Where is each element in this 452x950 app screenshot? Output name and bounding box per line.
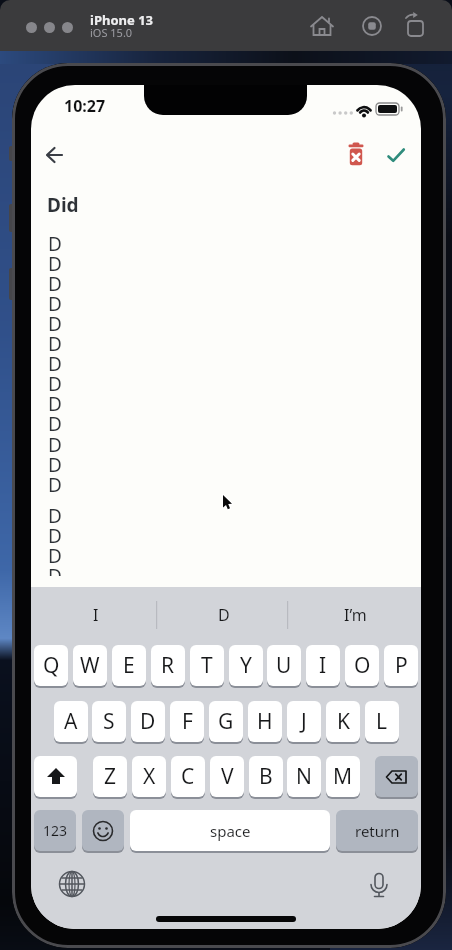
button[interactable] [34, 756, 77, 797]
staticText: K [337, 707, 350, 736]
staticText: M [333, 762, 353, 791]
staticText: A [64, 707, 78, 736]
button[interactable]: G [209, 701, 243, 742]
button[interactable]: I [33, 597, 158, 633]
staticText: 10:27 [64, 95, 106, 117]
button[interactable] [356, 10, 388, 42]
button[interactable]: return [336, 810, 418, 851]
button[interactable] [400, 10, 432, 42]
button[interactable] [339, 135, 373, 169]
staticText: Did [47, 192, 79, 218]
staticText: N [296, 762, 312, 791]
button[interactable]: D [131, 701, 165, 742]
staticText: F [182, 707, 193, 736]
staticText: I’m [344, 604, 367, 626]
staticText: G [218, 707, 234, 736]
staticText: Y [240, 651, 252, 680]
button[interactable]: space [130, 810, 330, 851]
staticText: D [218, 604, 230, 626]
button[interactable] [57, 869, 87, 899]
staticText: D [48, 271, 62, 297]
staticText: S [103, 707, 115, 736]
staticText: V [221, 762, 234, 791]
staticText: D [48, 523, 62, 549]
button[interactable]: J [287, 701, 321, 742]
button[interactable]: Y [229, 645, 263, 686]
staticText: L [376, 707, 388, 736]
staticText: D [48, 432, 62, 458]
button[interactable]: T [190, 645, 224, 686]
button[interactable] [44, 22, 55, 33]
staticText: T [201, 651, 213, 680]
staticText: D [48, 472, 62, 498]
staticText: D [48, 371, 62, 397]
staticText: space [210, 821, 251, 841]
staticText: 123 [43, 821, 68, 840]
staticText: O [354, 651, 371, 680]
button[interactable]: Z [93, 756, 127, 797]
staticText: P [395, 651, 408, 680]
button[interactable]: L [365, 701, 399, 742]
staticText: D [48, 543, 62, 569]
staticText: D [48, 251, 62, 277]
button[interactable] [62, 22, 73, 33]
staticText: C [181, 762, 195, 791]
staticText: D [48, 391, 62, 417]
button[interactable] [375, 756, 418, 797]
button[interactable]: D [159, 597, 289, 633]
staticText: D [48, 452, 62, 478]
staticText: J [301, 707, 307, 736]
staticText: return [355, 821, 400, 841]
button[interactable] [26, 22, 37, 33]
button[interactable] [379, 137, 413, 171]
button[interactable]: C [171, 756, 205, 797]
staticText: D [48, 563, 62, 576]
staticText: D [140, 707, 156, 736]
staticText: X [143, 762, 156, 791]
button[interactable]: R [151, 645, 185, 686]
staticText: H [257, 707, 273, 736]
button[interactable]: V [210, 756, 244, 797]
button[interactable] [37, 137, 73, 173]
staticText: B [259, 762, 273, 791]
button[interactable]: H [248, 701, 282, 742]
button[interactable]: I’m [290, 597, 421, 633]
button[interactable] [364, 871, 394, 905]
button[interactable]: P [384, 645, 418, 686]
staticText: I [319, 651, 327, 680]
staticText: iPhone 13 [90, 11, 153, 29]
button[interactable]: A [54, 701, 88, 742]
button[interactable] [82, 810, 124, 851]
button[interactable]: 123 [34, 810, 76, 851]
staticText: R [161, 651, 175, 680]
staticText: D [48, 411, 62, 437]
button[interactable]: O [345, 645, 379, 686]
staticText: Q [43, 651, 60, 680]
staticText: E [123, 651, 135, 680]
staticText: Z [104, 762, 117, 791]
button[interactable] [306, 10, 338, 42]
button[interactable]: S [92, 701, 126, 742]
button[interactable]: K [326, 701, 360, 742]
staticText: D [48, 503, 62, 529]
staticText: D [48, 351, 62, 377]
staticText: D [48, 311, 62, 337]
staticText: D [48, 331, 62, 357]
button[interactable]: E [112, 645, 146, 686]
button[interactable]: X [132, 756, 166, 797]
staticText: W [80, 651, 100, 680]
button[interactable]: W [73, 645, 107, 686]
button[interactable]: N [287, 756, 321, 797]
button[interactable]: F [170, 701, 204, 742]
staticText: U [276, 651, 292, 680]
staticText: D [48, 231, 62, 257]
button[interactable]: B [249, 756, 283, 797]
staticText: I [93, 604, 99, 626]
button[interactable]: I [306, 645, 340, 686]
button[interactable]: Q [34, 645, 68, 686]
staticText: D [48, 291, 62, 317]
button[interactable]: M [326, 756, 360, 797]
staticText: iOS 15.0 [90, 25, 133, 40]
button[interactable]: U [267, 645, 301, 686]
